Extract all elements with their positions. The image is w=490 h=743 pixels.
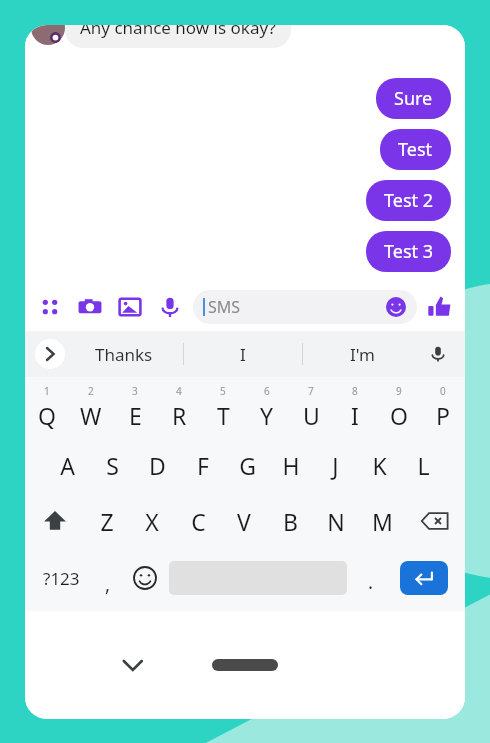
staticText: I'm: [350, 343, 375, 366]
button[interactable]: Test: [380, 129, 451, 170]
button[interactable]: Test 2: [366, 180, 451, 221]
staticText: W: [80, 400, 102, 431]
staticText: C: [191, 506, 206, 537]
staticText: Test: [398, 137, 433, 162]
staticText: ,: [105, 571, 111, 597]
button[interactable]: I: [184, 331, 302, 377]
staticText: I: [351, 400, 359, 431]
button[interactable]: Shift: [25, 493, 84, 549]
button[interactable]: More options: [37, 294, 63, 320]
staticText: Z: [100, 506, 114, 537]
button[interactable]: H: [269, 437, 313, 493]
button[interactable]: D: [135, 437, 180, 493]
staticText: V: [237, 506, 251, 537]
staticText: 1: [44, 384, 50, 398]
button[interactable]: .: [351, 549, 391, 607]
staticText: 4: [176, 384, 182, 398]
staticText: 3: [132, 384, 138, 398]
button[interactable]: 6: [245, 381, 289, 437]
button[interactable]: Voice message: [157, 294, 183, 320]
staticText: S: [106, 450, 119, 481]
staticText: O: [390, 400, 408, 431]
staticText: P: [436, 400, 450, 431]
button[interactable]: K: [357, 437, 401, 493]
button[interactable]: 0: [421, 381, 465, 437]
staticText: D: [149, 450, 166, 481]
button[interactable]: I'm: [303, 331, 421, 377]
button[interactable]: 7: [289, 381, 333, 437]
button[interactable]: Test 3: [366, 231, 451, 272]
button[interactable]: 5: [201, 381, 245, 437]
staticText: J: [332, 450, 339, 481]
staticText: L: [417, 450, 430, 481]
staticText: N: [327, 506, 345, 537]
staticText: A: [60, 450, 75, 481]
staticText: M: [372, 506, 393, 537]
button[interactable]: ?123: [33, 549, 90, 607]
button[interactable]: C: [175, 493, 221, 549]
staticText: 5: [220, 384, 226, 398]
staticText: 7: [308, 384, 314, 398]
staticText: SMS: [208, 296, 241, 318]
staticText: 8: [352, 384, 358, 398]
staticText: U: [303, 400, 320, 431]
staticText: X: [145, 506, 159, 537]
button[interactable]: SMS: [193, 290, 417, 324]
staticText: .: [368, 569, 374, 595]
staticText: Y: [260, 400, 274, 431]
button[interactable]: M: [359, 493, 405, 549]
button[interactable]: 4: [157, 381, 201, 437]
button[interactable]: ,: [90, 549, 125, 607]
staticText: F: [197, 450, 209, 481]
button[interactable]: Emoji: [385, 296, 407, 318]
button[interactable]: B: [267, 493, 313, 549]
button[interactable]: Voice input: [421, 331, 455, 377]
button[interactable]: 3: [113, 381, 157, 437]
staticText: K: [372, 450, 387, 481]
button[interactable]: 2: [69, 381, 113, 437]
staticText: Q: [38, 400, 56, 431]
staticText: Any chance now is okay?: [80, 25, 276, 39]
button[interactable]: 9: [377, 381, 421, 437]
button[interactable]: Any chance now is okay?: [65, 25, 291, 48]
staticText: 2: [88, 384, 94, 398]
staticText: Test 2: [384, 188, 433, 213]
button[interactable]: X: [129, 493, 175, 549]
button[interactable]: A: [45, 437, 90, 493]
button[interactable]: Emoji keyboard: [125, 549, 165, 607]
button[interactable]: 8: [333, 381, 377, 437]
button[interactable]: Enter: [400, 561, 448, 595]
staticText: Sure: [394, 86, 433, 111]
staticText: Test 3: [384, 239, 433, 264]
button[interactable]: N: [313, 493, 359, 549]
staticText: R: [172, 400, 187, 431]
button[interactable]: G: [225, 437, 269, 493]
staticText: ?123: [43, 567, 80, 590]
staticText: T: [217, 400, 230, 431]
button[interactable]: Backspace: [405, 493, 465, 549]
staticText: H: [282, 450, 300, 481]
staticText: I: [240, 343, 246, 366]
staticText: B: [283, 506, 298, 537]
staticText: 6: [264, 384, 270, 398]
button[interactable]: Gallery: [117, 294, 143, 320]
button[interactable]: V: [221, 493, 267, 549]
button[interactable]: S: [90, 437, 135, 493]
staticText: E: [129, 400, 142, 431]
button[interactable]: L: [401, 437, 445, 493]
button[interactable]: Sure: [376, 78, 451, 119]
button[interactable]: Send thumbs up: [427, 294, 453, 320]
button[interactable]: 1: [25, 381, 69, 437]
button[interactable]: Thanks: [65, 331, 183, 377]
button[interactable]: Camera: [77, 294, 103, 320]
button[interactable]: J: [313, 437, 357, 493]
staticText: 0: [440, 384, 446, 398]
staticText: G: [239, 450, 256, 481]
staticText: Thanks: [95, 343, 153, 366]
button[interactable]: Expand suggestions: [35, 339, 65, 369]
button[interactable]: F: [180, 437, 225, 493]
button[interactable]: Z: [84, 493, 129, 549]
staticText: 9: [396, 384, 402, 398]
